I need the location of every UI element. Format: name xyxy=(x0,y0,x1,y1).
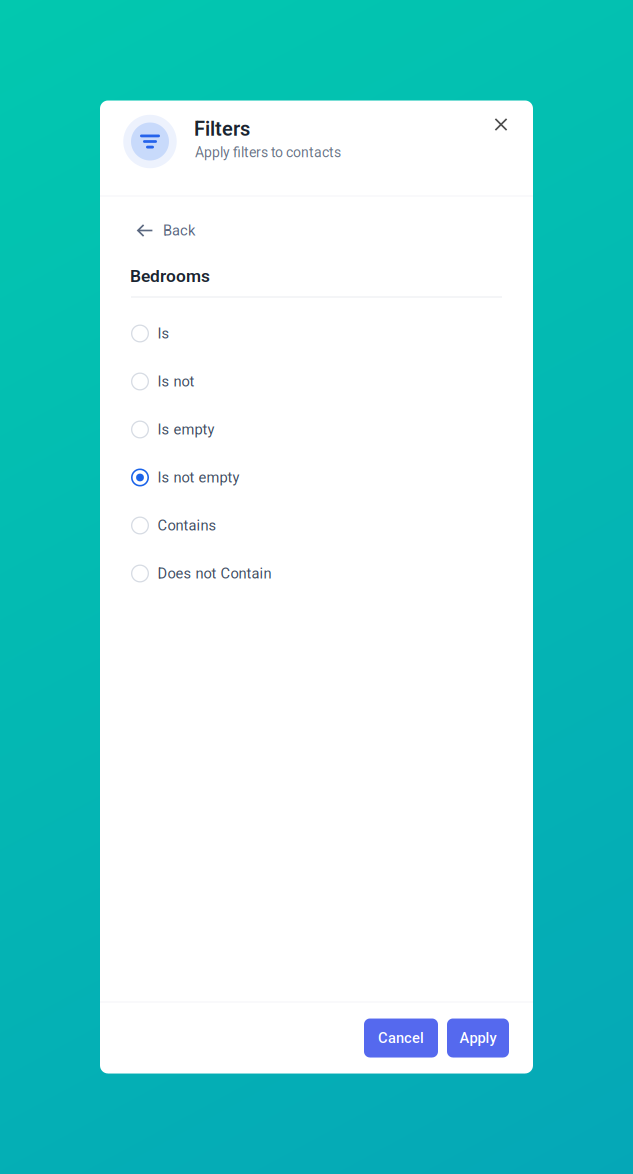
button[interactable]: Is not xyxy=(131,357,502,405)
staticText: Is not xyxy=(157,373,194,390)
button[interactable]: Cancel xyxy=(364,1018,438,1057)
staticText: Cancel xyxy=(378,1029,424,1047)
button[interactable]: Does not Contain xyxy=(131,549,502,597)
staticText: Back xyxy=(163,222,195,239)
button[interactable]: Contains xyxy=(131,501,502,549)
staticText: Apply xyxy=(459,1029,496,1047)
staticText: Contains xyxy=(157,517,216,534)
staticText: Does not Contain xyxy=(157,565,271,582)
button[interactable]: Is xyxy=(131,309,502,357)
button[interactable]: Is not empty xyxy=(131,453,502,501)
staticText: Filters xyxy=(194,117,250,141)
staticText: Is xyxy=(157,325,169,342)
staticText: Is not empty xyxy=(157,469,239,486)
button[interactable]: Is empty xyxy=(131,405,502,453)
staticText: Is empty xyxy=(157,421,214,438)
button[interactable]: Apply xyxy=(447,1018,509,1057)
staticText: Bedrooms xyxy=(130,266,210,286)
staticText: Apply filters to contacts xyxy=(195,144,341,161)
button[interactable]: Close xyxy=(485,109,516,140)
button[interactable]: Back xyxy=(135,214,197,247)
